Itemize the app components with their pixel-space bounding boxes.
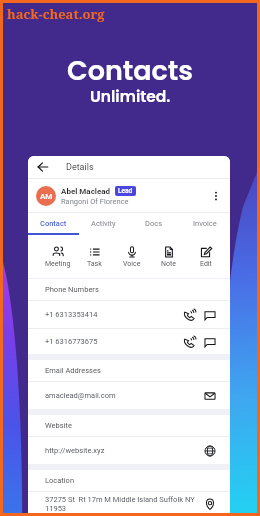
staticText: Note [161,260,176,268]
staticText: hack-cheat.org [7,5,105,23]
button[interactable]: Open map [204,498,216,510]
button[interactable]: +1 6313353414 [28,301,230,328]
staticText: +1 6316773675 [45,337,184,346]
staticText: 37275 St Rt 17m M Middle Island Suffolk … [45,495,204,513]
button[interactable]: Message [204,336,216,348]
staticText: Docs [145,219,162,228]
button[interactable]: Contact [28,213,78,233]
staticText: Rangoni Of Florence [61,197,129,206]
staticText: Task [87,260,102,268]
button[interactable]: amaclead@mail.com [28,382,230,409]
staticText: Voice [123,260,141,268]
staticText: +1 6313353414 [45,310,184,319]
button[interactable]: http://website.xyz [28,437,230,464]
staticText: Website [45,421,72,430]
button[interactable]: 37275 St Rt 17m M Middle Island Suffolk … [28,492,230,516]
staticText: Email Addresses [45,366,101,375]
button[interactable]: Open website [204,445,216,457]
staticText: http://website.xyz [45,446,204,455]
staticText: Contacts [67,52,194,90]
button[interactable]: Call [184,336,196,348]
button[interactable]: Note [150,235,187,278]
button[interactable]: Back [36,160,50,174]
staticText: Invoice [193,219,217,228]
button[interactable]: Meeting [39,235,76,278]
button[interactable]: Message [204,309,216,321]
button[interactable]: Task [76,235,113,278]
staticText: Phone Numbers [45,285,99,294]
staticText: Activity [91,219,116,228]
staticText: Contact [40,219,67,228]
button[interactable]: Call [184,309,196,321]
staticText: Lead [118,187,133,195]
staticText: Meeting [45,260,71,268]
staticText: Edit [200,260,212,268]
button[interactable]: Activity [78,213,128,233]
staticText: Abel Maclead [61,187,111,196]
button[interactable]: Docs [128,213,179,233]
button[interactable]: Send email [204,390,216,402]
button[interactable]: +1 6316773675 [28,329,230,354]
staticText: AM [40,192,53,201]
staticText: Unlimited. [90,86,171,108]
staticText: Location [45,476,75,485]
button[interactable]: More options [208,188,224,204]
staticText: amaclead@mail.com [45,391,204,400]
button[interactable]: Voice [113,235,150,278]
button[interactable]: Invoice [179,213,230,233]
button[interactable]: Edit [187,235,224,278]
staticText: Details [66,162,94,173]
